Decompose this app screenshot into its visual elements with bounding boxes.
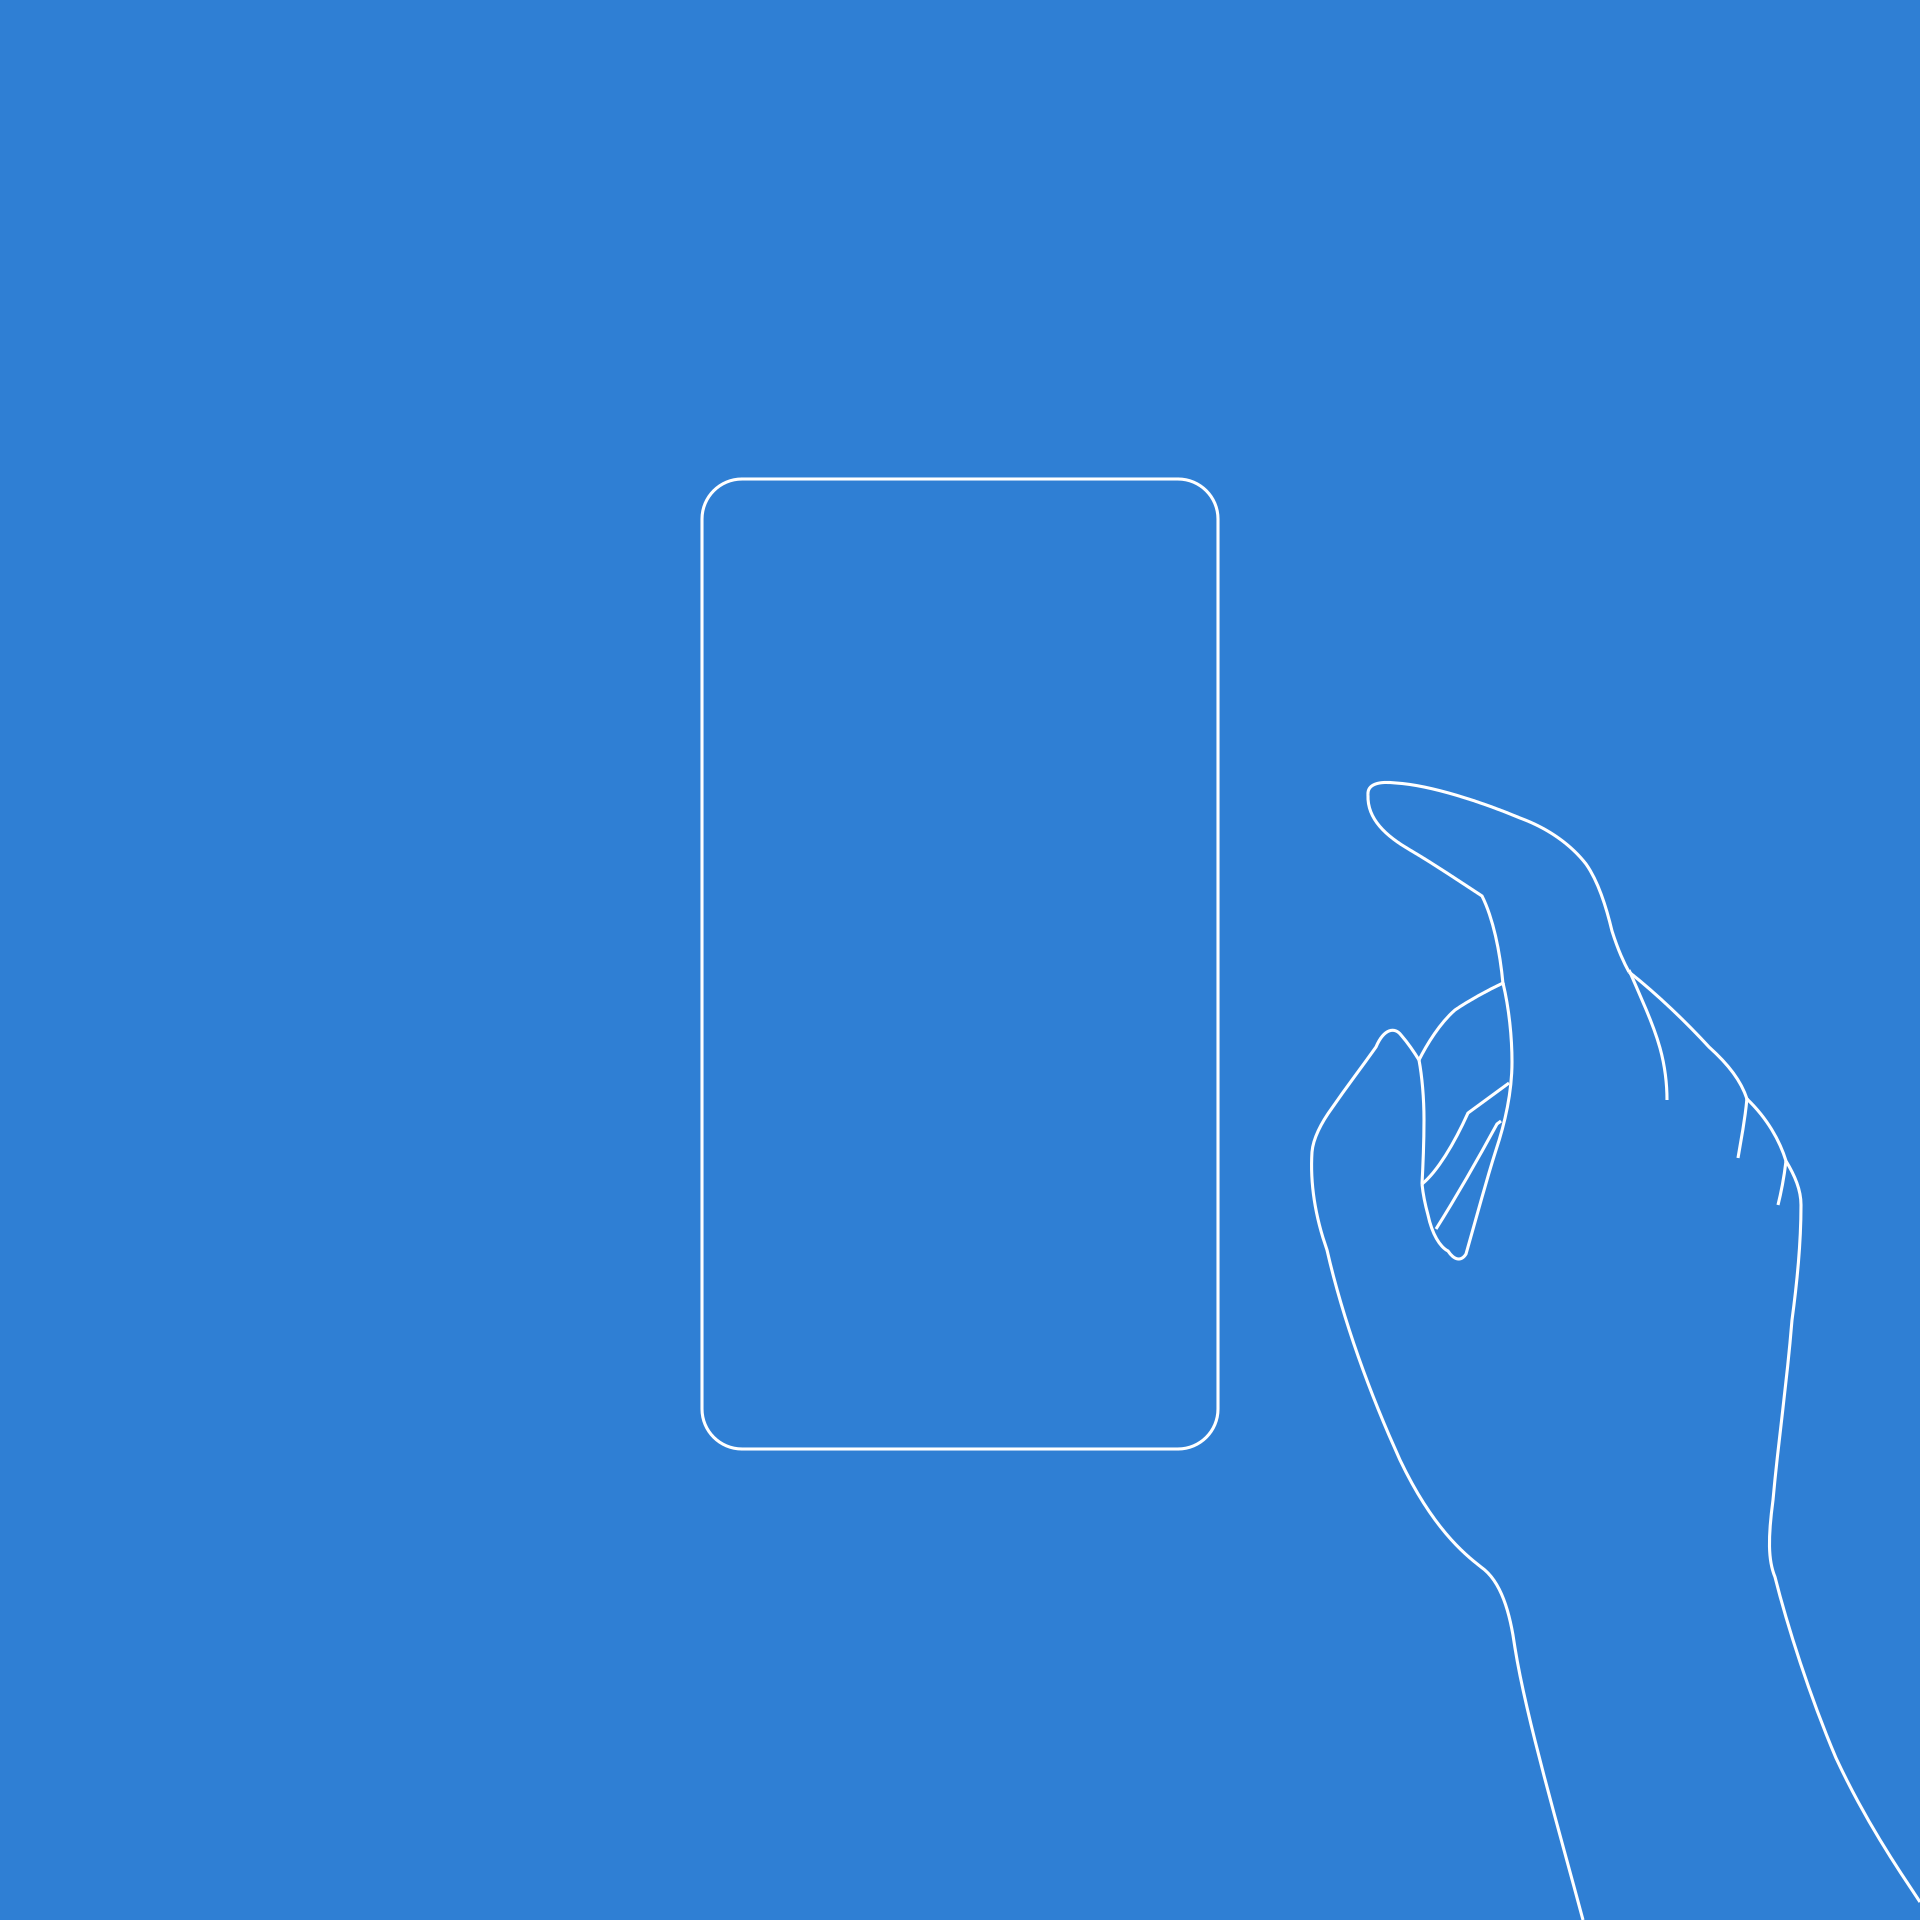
button[interactable]: Phone screen [0, 0, 1920, 1920]
